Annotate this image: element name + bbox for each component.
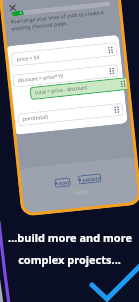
- staticText: price = 54: [16, 54, 40, 63]
- staticText: print(total): [22, 113, 49, 123]
- staticText: discount = price*10: [17, 73, 64, 84]
- staticText: CHECK: [73, 188, 90, 196]
- button[interactable]: print(total): [17, 103, 124, 126]
- button[interactable]: HINT: [54, 177, 71, 188]
- button[interactable]: total = price - discount: [29, 77, 130, 100]
- staticText: complex projects...: [18, 252, 121, 267]
- button[interactable]: Close: [8, 3, 18, 13]
- button[interactable]: price = 54: [11, 42, 118, 67]
- staticText: ANSWER: [82, 175, 102, 183]
- staticText: ...build more and more: [8, 230, 132, 245]
- button[interactable]: ANSWER: [78, 173, 102, 184]
- staticText: Rearrange your lines of code to create a…: [10, 9, 109, 32]
- staticText: total = price - discount: [35, 84, 88, 96]
- staticText: HINT: [58, 179, 71, 187]
- button[interactable]: discount = price*10: [12, 64, 119, 88]
